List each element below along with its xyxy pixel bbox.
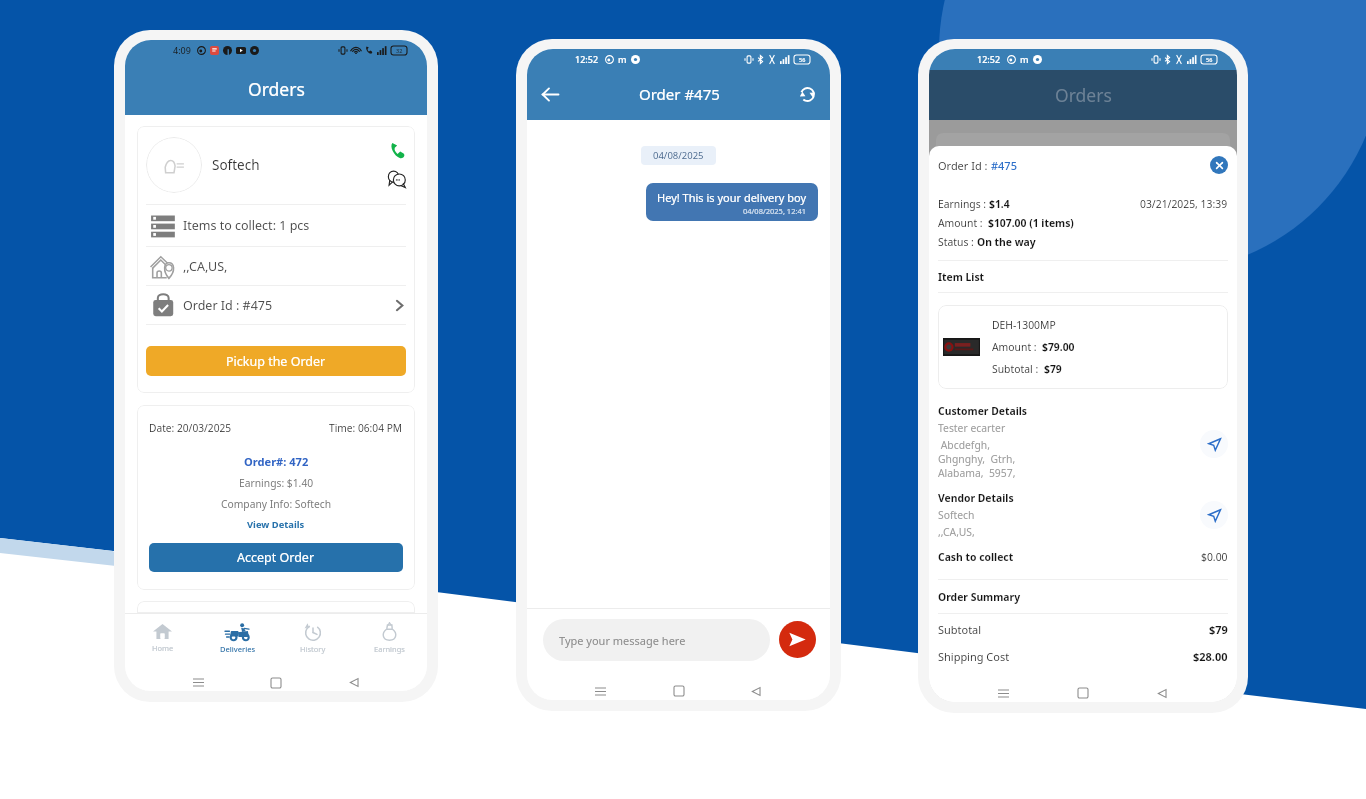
staticText: 04/08/2025 — [653, 149, 704, 162]
staticText: Time: 06:04 PM — [329, 421, 403, 435]
button[interactable]: Pickup the Order — [146, 346, 406, 376]
staticText: Earnings: $1.40 — [239, 476, 314, 490]
button[interactable]: Deliveries — [200, 614, 275, 662]
staticText: Order Summary — [938, 590, 1021, 604]
other: Home — [674, 686, 684, 696]
staticText: Softech — [938, 508, 975, 522]
staticText: 4:09 — [173, 44, 191, 56]
staticText: Softech — [212, 156, 260, 174]
staticText: Customer Details — [938, 404, 1028, 418]
button[interactable]: Earnings — [351, 614, 427, 662]
staticText: Tester ecarter — [938, 421, 1006, 435]
staticText: Orders — [1055, 83, 1112, 107]
staticText: 56 — [799, 56, 806, 63]
staticText: Type your message here — [559, 633, 686, 648]
button[interactable]: Close — [1210, 156, 1228, 174]
staticText: On the way — [977, 235, 1036, 249]
other: Back — [349, 677, 360, 688]
staticText: 32 — [396, 47, 403, 54]
staticText: Order Id : #475 — [183, 297, 273, 314]
staticText: 56 — [1206, 56, 1213, 63]
staticText: Home — [152, 643, 174, 653]
other: Recent apps — [998, 688, 1009, 699]
staticText: Orders — [248, 77, 305, 101]
staticText: Earnings — [374, 644, 405, 654]
button[interactable]: Chat — [388, 170, 406, 188]
other: Back — [1157, 688, 1168, 699]
staticText: $79 — [1044, 362, 1062, 376]
staticText: 03/21/2025, 13:39 — [1140, 197, 1228, 211]
staticText: #475 — [991, 158, 1017, 173]
button[interactable]: Items to collect: 1 pcs — [146, 205, 406, 246]
other: Recent apps — [595, 686, 606, 697]
staticText: Order#: 472 — [244, 454, 309, 469]
staticText: Pickup the Order — [226, 353, 326, 370]
staticText: Vendor Details — [938, 491, 1014, 505]
staticText: Cash to collect — [938, 550, 1014, 564]
staticText: $79 — [1209, 622, 1228, 637]
staticText: $79.00 — [1042, 340, 1075, 354]
staticText: ,,CA,US, — [183, 258, 228, 275]
button[interactable]: Refresh — [799, 86, 816, 103]
staticText: Ghgnghy, Gtrh, — [938, 452, 1016, 466]
staticText: Company Info: Softech — [221, 497, 332, 511]
staticText: m — [1020, 53, 1029, 65]
button[interactable]: Order Id : #475 — [146, 286, 406, 324]
staticText: DEH-1300MP — [992, 318, 1056, 332]
staticText: View Details — [247, 518, 305, 531]
staticText: Amount : — [992, 340, 1042, 354]
staticText: $1.4 — [989, 197, 1010, 211]
button[interactable]: ,,CA,US, — [146, 247, 406, 285]
button[interactable]: Send — [779, 621, 816, 658]
staticText: 04/08/2025, 12:41 — [743, 206, 807, 216]
button[interactable]: Back — [541, 85, 560, 104]
staticText: History — [300, 644, 326, 654]
staticText: Item List — [938, 270, 985, 284]
button[interactable]: Type your message here — [543, 619, 770, 661]
staticText: Abcdefgh, — [938, 438, 990, 452]
staticText: $0.00 — [1201, 550, 1228, 564]
staticText: $28.00 — [1193, 649, 1228, 664]
other: Home — [271, 678, 281, 688]
button[interactable]: Home — [125, 614, 200, 662]
staticText: ,,CA,US, — [938, 525, 975, 539]
button[interactable]: View Details — [149, 514, 403, 535]
staticText: Date: 20/03/2025 — [149, 421, 232, 435]
staticText: Hey! This is your delivery boy — [657, 190, 807, 205]
button[interactable]: Call — [389, 142, 406, 159]
staticText: $107.00 (1 items) — [988, 216, 1074, 230]
staticText: Items to collect: 1 pcs — [183, 217, 310, 234]
staticText: Amount : — [938, 216, 988, 230]
staticText: Accept Order — [237, 549, 315, 566]
button[interactable]: History — [275, 614, 351, 662]
button[interactable]: Navigate to customer — [1200, 430, 1228, 458]
button[interactable]: Navigate to vendor — [1200, 501, 1228, 529]
staticText: Order #475 — [639, 84, 720, 104]
button[interactable]: Accept Order — [149, 543, 403, 572]
other: Recent apps — [193, 677, 204, 688]
staticText: 12:52 — [977, 53, 1001, 65]
staticText: Alabama, 5957, — [938, 466, 1016, 480]
staticText: Status : — [938, 235, 977, 249]
staticText: Shipping Cost — [938, 649, 1010, 664]
other: Back — [751, 686, 762, 697]
staticText: Subtotal : — [992, 362, 1044, 376]
other: Home — [1078, 688, 1088, 698]
staticText: Earnings : — [938, 197, 989, 211]
staticText: Deliveries — [220, 644, 256, 654]
staticText: 12:52 — [575, 53, 599, 65]
staticText: Order Id : — [938, 158, 991, 173]
staticText: m — [618, 53, 627, 65]
staticText: Subtotal — [938, 622, 982, 637]
